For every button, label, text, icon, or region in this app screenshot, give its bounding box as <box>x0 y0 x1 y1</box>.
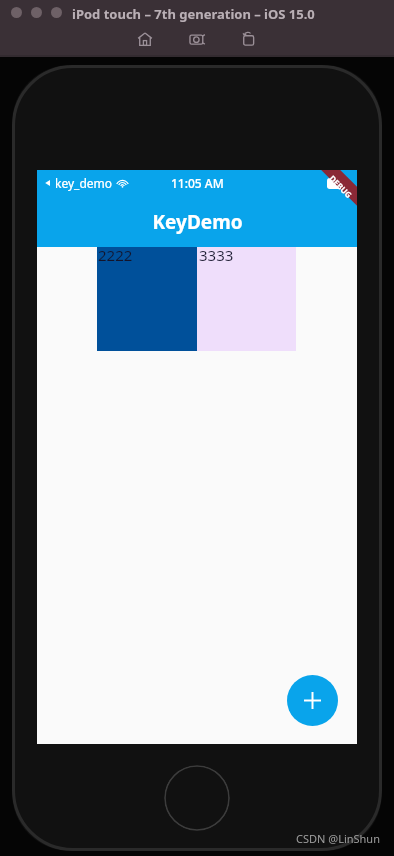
button[interactable]: Rotate <box>238 28 260 50</box>
staticText: 11:05 AM <box>171 175 224 191</box>
staticText: KeyDemo <box>152 209 243 235</box>
button[interactable]: 3333 <box>197 247 296 351</box>
staticText: CSDN @LinShun <box>296 831 380 846</box>
staticText: 3333 <box>199 245 234 265</box>
button[interactable]: Add <box>287 675 338 726</box>
button[interactable]: 2222 <box>97 247 197 351</box>
staticText: DEBUG <box>327 173 355 200</box>
staticText: 2222 <box>98 245 133 265</box>
button[interactable]: Window control <box>51 7 62 18</box>
button[interactable]: Home button <box>164 765 230 831</box>
button[interactable]: Home <box>134 28 156 50</box>
staticText: iPod touch – 7th generation – iOS 15.0 <box>72 5 315 23</box>
button[interactable]: Screenshot <box>186 28 208 50</box>
staticText: key_demo <box>55 175 113 191</box>
button[interactable]: Window control <box>11 7 22 18</box>
button[interactable]: Window control <box>31 7 42 18</box>
